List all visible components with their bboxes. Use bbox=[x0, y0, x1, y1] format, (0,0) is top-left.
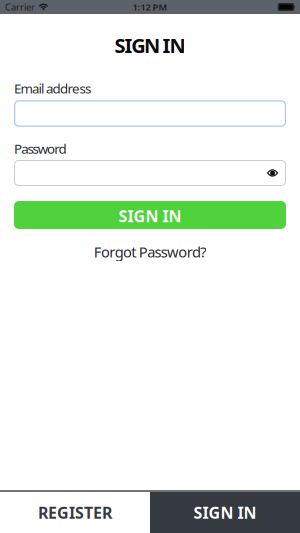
button[interactable]: REGISTER bbox=[0, 492, 150, 533]
button[interactable]: SIGN IN bbox=[0, 201, 300, 229]
staticText: REGISTER bbox=[38, 502, 112, 523]
button[interactable] bbox=[0, 100, 300, 127]
staticText: Forgot Password? bbox=[94, 242, 206, 261]
staticText: Email address bbox=[14, 80, 91, 97]
staticText: SIGN IN bbox=[115, 32, 185, 59]
staticText: SIGN IN bbox=[118, 205, 181, 226]
staticText: 1:12 PM bbox=[132, 1, 167, 13]
button[interactable]: Forgot Password? bbox=[0, 242, 300, 261]
staticText: Password bbox=[14, 140, 66, 157]
button[interactable]: SIGN IN bbox=[150, 492, 300, 533]
button[interactable] bbox=[0, 160, 300, 186]
staticText: Carrier bbox=[5, 1, 35, 13]
staticText: SIGN IN bbox=[193, 502, 256, 523]
